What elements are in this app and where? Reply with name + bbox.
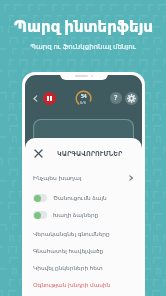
button[interactable]: Close — [32, 147, 45, 160]
staticText: Խաղի ձայները — [53, 211, 99, 219]
staticText: Պարզ ու ֆունկցիոնալ մենյու — [30, 42, 136, 52]
staticText: Գնահատել հավելվածը — [33, 247, 104, 255]
staticText: ? — [114, 93, 118, 103]
button[interactable]: Help — [110, 92, 122, 104]
staticText: Պարզ ինտերֆեյս — [14, 16, 153, 36]
staticText: Ծանուցումն ձայն — [53, 194, 107, 202]
button[interactable]: Pause — [43, 92, 56, 105]
staticText: Ինչպես խաղալ — [33, 174, 82, 182]
staticText: 6/6 — [80, 100, 87, 105]
staticText: Օգնության խնդրի մասին — [33, 281, 111, 289]
button[interactable]: Օգնության խնդրի մասին — [25, 280, 142, 290]
button[interactable]: 1. Խնձոր — [33, 119, 134, 179]
button[interactable]: Գնահատել հավելվածը — [25, 246, 142, 256]
button[interactable]: Ինչպես խաղալ — [25, 171, 142, 185]
staticText: 54 — [81, 93, 87, 100]
staticText: ԿԱՐԳԱՎՈՐՈՒՄՆԵՐ — [57, 150, 123, 158]
button[interactable]: Ծանուցումն ձայն — [25, 191, 142, 204]
button[interactable]: Վերականգնել գնումները — [25, 229, 142, 239]
staticText: Վերականգնել գնումները — [33, 230, 110, 238]
button[interactable]: Settings — [125, 92, 138, 105]
staticText: Կիսվել ընկերների հետ — [33, 264, 103, 272]
button[interactable]: Back — [29, 92, 41, 104]
button[interactable]: Կիսվել ընկերների հետ — [25, 263, 142, 273]
button[interactable]: Խաղի ձայները — [25, 208, 142, 221]
